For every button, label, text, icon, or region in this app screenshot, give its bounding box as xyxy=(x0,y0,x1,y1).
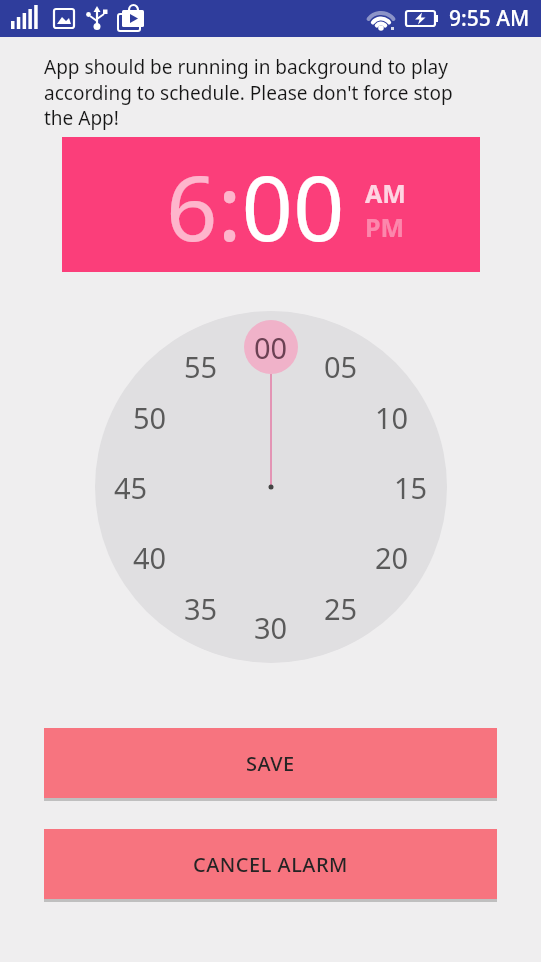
staticText: 20 xyxy=(375,538,409,577)
staticText: AM xyxy=(365,176,406,210)
button[interactable]: 10 xyxy=(352,392,432,442)
staticText: 30 xyxy=(254,608,288,647)
staticText: 45 xyxy=(114,468,148,507)
staticText: PM xyxy=(365,210,405,244)
staticText: 15 xyxy=(394,468,428,507)
button[interactable]: AM xyxy=(345,175,425,211)
button[interactable]: 05 xyxy=(301,341,381,391)
staticText: 05 xyxy=(324,347,358,386)
staticText: 9:55 AM xyxy=(449,4,530,33)
staticText: App should be running in background to p… xyxy=(44,54,453,130)
button[interactable]: 40 xyxy=(110,532,190,582)
staticText: 00 xyxy=(254,328,288,367)
staticText: 6:00 xyxy=(166,145,345,268)
button[interactable] xyxy=(62,137,480,272)
button[interactable]: 30 xyxy=(231,602,311,652)
button[interactable]: 15 xyxy=(371,462,451,512)
staticText: CANCEL ALARM xyxy=(193,851,348,878)
button[interactable]: 45 xyxy=(91,462,171,512)
staticText: 55 xyxy=(184,347,218,386)
button[interactable]: SAVE xyxy=(44,728,497,798)
button[interactable]: 35 xyxy=(161,583,241,633)
button[interactable]: 00 xyxy=(231,322,311,372)
staticText: 35 xyxy=(184,589,218,628)
staticText: 25 xyxy=(324,589,358,628)
button[interactable]: CANCEL ALARM xyxy=(44,829,497,899)
button[interactable]: 50 xyxy=(110,392,190,442)
button[interactable]: 25 xyxy=(301,583,381,633)
staticText: 40 xyxy=(133,538,167,577)
staticText: 10 xyxy=(375,398,409,437)
button[interactable]: 20 xyxy=(352,532,432,582)
staticText: SAVE xyxy=(246,750,295,777)
staticText: 50 xyxy=(133,398,167,437)
button[interactable]: 55 xyxy=(161,341,241,391)
button[interactable]: PM xyxy=(345,209,425,245)
